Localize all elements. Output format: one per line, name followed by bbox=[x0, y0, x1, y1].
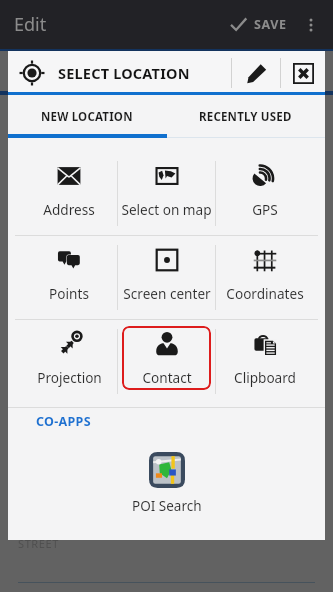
staticText: Coordinates bbox=[226, 284, 304, 303]
staticText: GPS bbox=[252, 200, 278, 219]
staticText: Contact bbox=[142, 368, 192, 387]
staticText: Edit bbox=[14, 12, 47, 37]
staticText: Clipboard bbox=[234, 368, 296, 387]
button[interactable]: RECENTLY USED bbox=[166, 95, 325, 138]
button[interactable]: Clipboard bbox=[216, 320, 313, 403]
button[interactable]: More options bbox=[297, 0, 325, 49]
button[interactable]: Edit location bbox=[232, 51, 280, 95]
button[interactable]: NEW LOCATION bbox=[8, 95, 166, 138]
button[interactable]: SAVE bbox=[224, 8, 293, 41]
staticText: CO-APPS bbox=[36, 413, 91, 430]
staticText: Select on map bbox=[121, 200, 212, 219]
staticText: STREET bbox=[18, 536, 59, 551]
staticText: SELECT LOCATION bbox=[58, 63, 190, 83]
button[interactable]: GPS bbox=[216, 152, 313, 235]
button[interactable]: Select on map bbox=[118, 152, 215, 235]
staticText: SAVE bbox=[254, 16, 287, 33]
staticText: Address bbox=[43, 200, 95, 219]
button[interactable]: Close bbox=[281, 51, 325, 95]
button[interactable]: Screen center bbox=[118, 236, 215, 319]
button[interactable]: Address bbox=[21, 152, 117, 235]
staticText: Points bbox=[49, 284, 89, 303]
button[interactable]: POI Search bbox=[122, 447, 212, 520]
button[interactable]: Contact bbox=[118, 320, 215, 403]
button[interactable]: Projection bbox=[21, 320, 117, 403]
staticText: POI Search bbox=[132, 497, 202, 515]
staticText: NEW LOCATION bbox=[41, 109, 133, 125]
staticText: Projection bbox=[37, 368, 102, 387]
staticText: RECENTLY USED bbox=[199, 109, 292, 125]
button[interactable]: Coordinates bbox=[216, 236, 313, 319]
button[interactable]: Points bbox=[21, 236, 117, 319]
staticText: Screen center bbox=[123, 284, 211, 303]
